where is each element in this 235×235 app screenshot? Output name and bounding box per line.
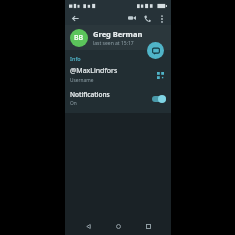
staticText: Greg Berman [93,29,143,39]
button[interactable]: QR code [155,70,166,81]
staticText: On [70,100,77,107]
staticText: BB [74,33,84,43]
staticText: @MaxLindfors [70,66,118,76]
button[interactable]: Send message [147,42,164,59]
button[interactable]: Notifications toggle [152,95,166,103]
button[interactable]: Back [81,219,95,233]
staticText: Username [70,77,94,84]
button[interactable]: Call [141,12,153,24]
button[interactable]: @MaxLindfors [65,64,171,87]
button[interactable]: Video call [126,12,138,24]
button[interactable]: BB [65,25,171,50]
button[interactable]: Back [70,13,81,24]
button[interactable]: More options [156,13,167,24]
button[interactable]: Notifications [65,87,171,111]
staticText: last seen at 15:17 [93,40,134,47]
button[interactable]: Recent apps [141,219,155,233]
staticText: Info [70,55,81,62]
button[interactable]: Home [111,219,125,233]
staticText: Notifications [70,90,110,99]
